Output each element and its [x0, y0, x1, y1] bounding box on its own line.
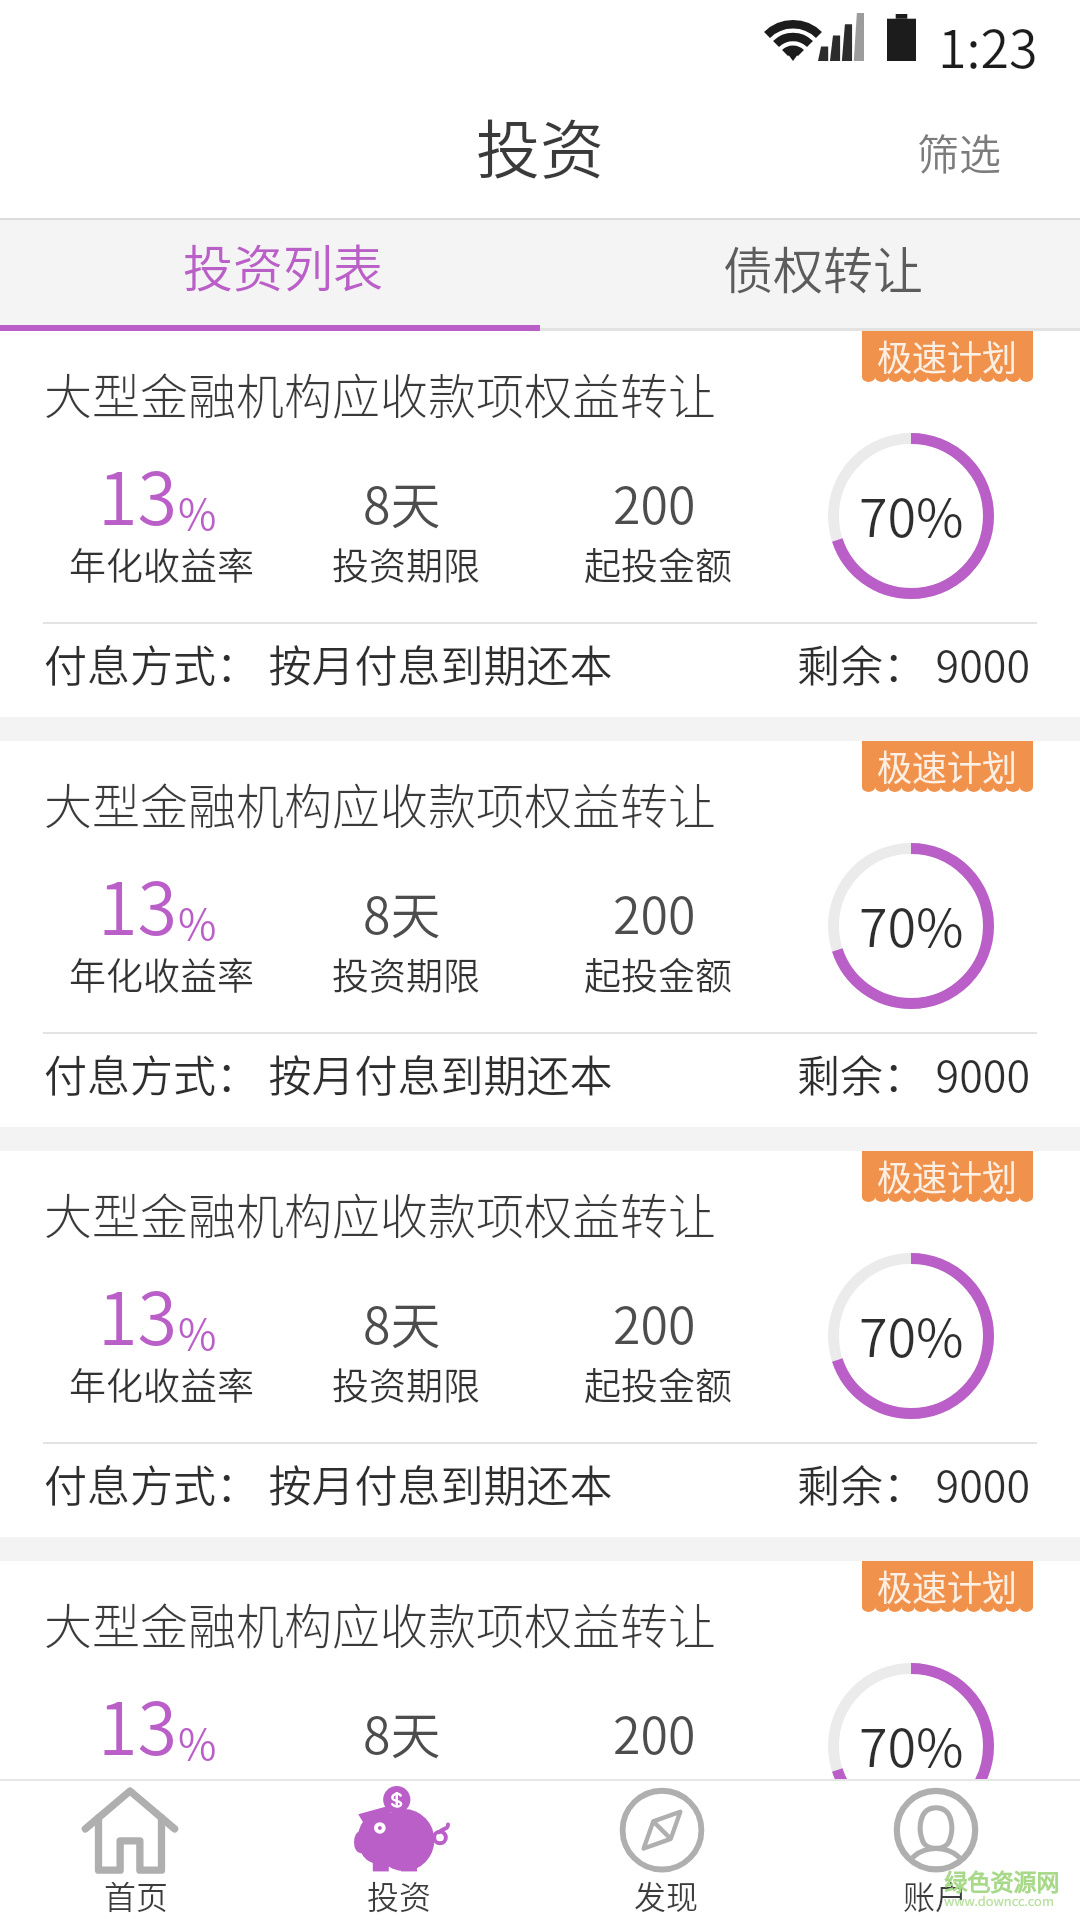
- staticText: 起投金额: [584, 537, 732, 591]
- staticText: 13: [98, 1671, 178, 1775]
- staticText: 8天: [363, 1286, 441, 1358]
- button[interactable]: 投资列表: [0, 218, 540, 331]
- staticText: 13: [98, 1261, 178, 1365]
- staticText: 剩余： 9000: [797, 1452, 1031, 1514]
- button[interactable]: Discover: [540, 1781, 810, 1920]
- staticText: 账户: [903, 1872, 968, 1918]
- staticText: 70%: [859, 1297, 964, 1372]
- button[interactable]: Home: [0, 1781, 270, 1920]
- staticText: 剩余： 9000: [797, 632, 1031, 694]
- staticText: www.downcc.com: [944, 1891, 1054, 1910]
- staticText: 付息方式： 按月付息到期还本: [44, 1042, 613, 1104]
- staticText: 1:23: [938, 8, 1038, 83]
- staticText: 极速计划: [877, 331, 1018, 376]
- staticText: 8天: [363, 876, 441, 948]
- staticText: 200: [613, 876, 696, 948]
- button[interactable]: Account: [810, 1781, 1080, 1920]
- staticText: 大型金融机构应收款项权益转让: [44, 358, 717, 428]
- button[interactable]: 极速计划: [0, 331, 1080, 717]
- staticText: %: [178, 891, 217, 952]
- staticText: 70%: [859, 477, 964, 552]
- staticText: 70%: [859, 1707, 964, 1779]
- staticText: 极速计划: [877, 740, 1018, 786]
- staticText: 年化收益率: [69, 537, 254, 591]
- staticText: 大型金融机构应收款项权益转让: [44, 768, 717, 838]
- staticText: 投资期限: [332, 1357, 480, 1411]
- staticText: 70%: [859, 887, 964, 962]
- staticText: 极速计划: [877, 1150, 1018, 1196]
- button[interactable]: 极速计划: [0, 1561, 1080, 1779]
- staticText: 8天: [363, 466, 441, 538]
- staticText: 起投金额: [584, 1357, 732, 1411]
- staticText: 首页: [104, 1872, 169, 1918]
- staticText: 投资: [367, 1872, 432, 1918]
- button[interactable]: 筛选: [877, 86, 1080, 215]
- staticText: %: [178, 1301, 217, 1362]
- staticText: %: [178, 1711, 217, 1772]
- staticText: 200: [613, 466, 696, 538]
- button[interactable]: 极速计划: [0, 741, 1080, 1127]
- staticText: 债权转让: [723, 231, 923, 303]
- staticText: 8天: [363, 1696, 441, 1768]
- staticText: 极速计划: [877, 1560, 1018, 1606]
- staticText: 年化收益率: [69, 1357, 254, 1411]
- staticText: 投资期限: [332, 947, 480, 1001]
- staticText: 付息方式： 按月付息到期还本: [44, 1452, 613, 1514]
- staticText: 年化收益率: [69, 947, 254, 1001]
- staticText: 付息方式： 按月付息到期还本: [44, 632, 613, 694]
- staticText: 200: [613, 1286, 696, 1358]
- staticText: 大型金融机构应收款项权益转让: [44, 1178, 717, 1248]
- staticText: 绿色资源网: [944, 1864, 1059, 1897]
- button[interactable]: Invest: [270, 1781, 540, 1920]
- staticText: 投资: [476, 99, 604, 192]
- staticText: 200: [613, 1696, 696, 1768]
- staticText: 投资列表: [183, 229, 383, 301]
- staticText: 起投金额: [584, 947, 732, 1001]
- staticText: 13: [98, 851, 178, 955]
- staticText: 13: [98, 441, 178, 545]
- staticText: 剩余： 9000: [797, 1042, 1031, 1104]
- staticText: 大型金融机构应收款项权益转让: [44, 1588, 717, 1658]
- staticText: 发现: [634, 1872, 699, 1918]
- staticText: 筛选: [917, 121, 1002, 182]
- button[interactable]: 极速计划: [0, 1151, 1080, 1537]
- staticText: 投资期限: [332, 537, 480, 591]
- button[interactable]: 债权转让: [540, 218, 1080, 331]
- staticText: %: [178, 481, 217, 542]
